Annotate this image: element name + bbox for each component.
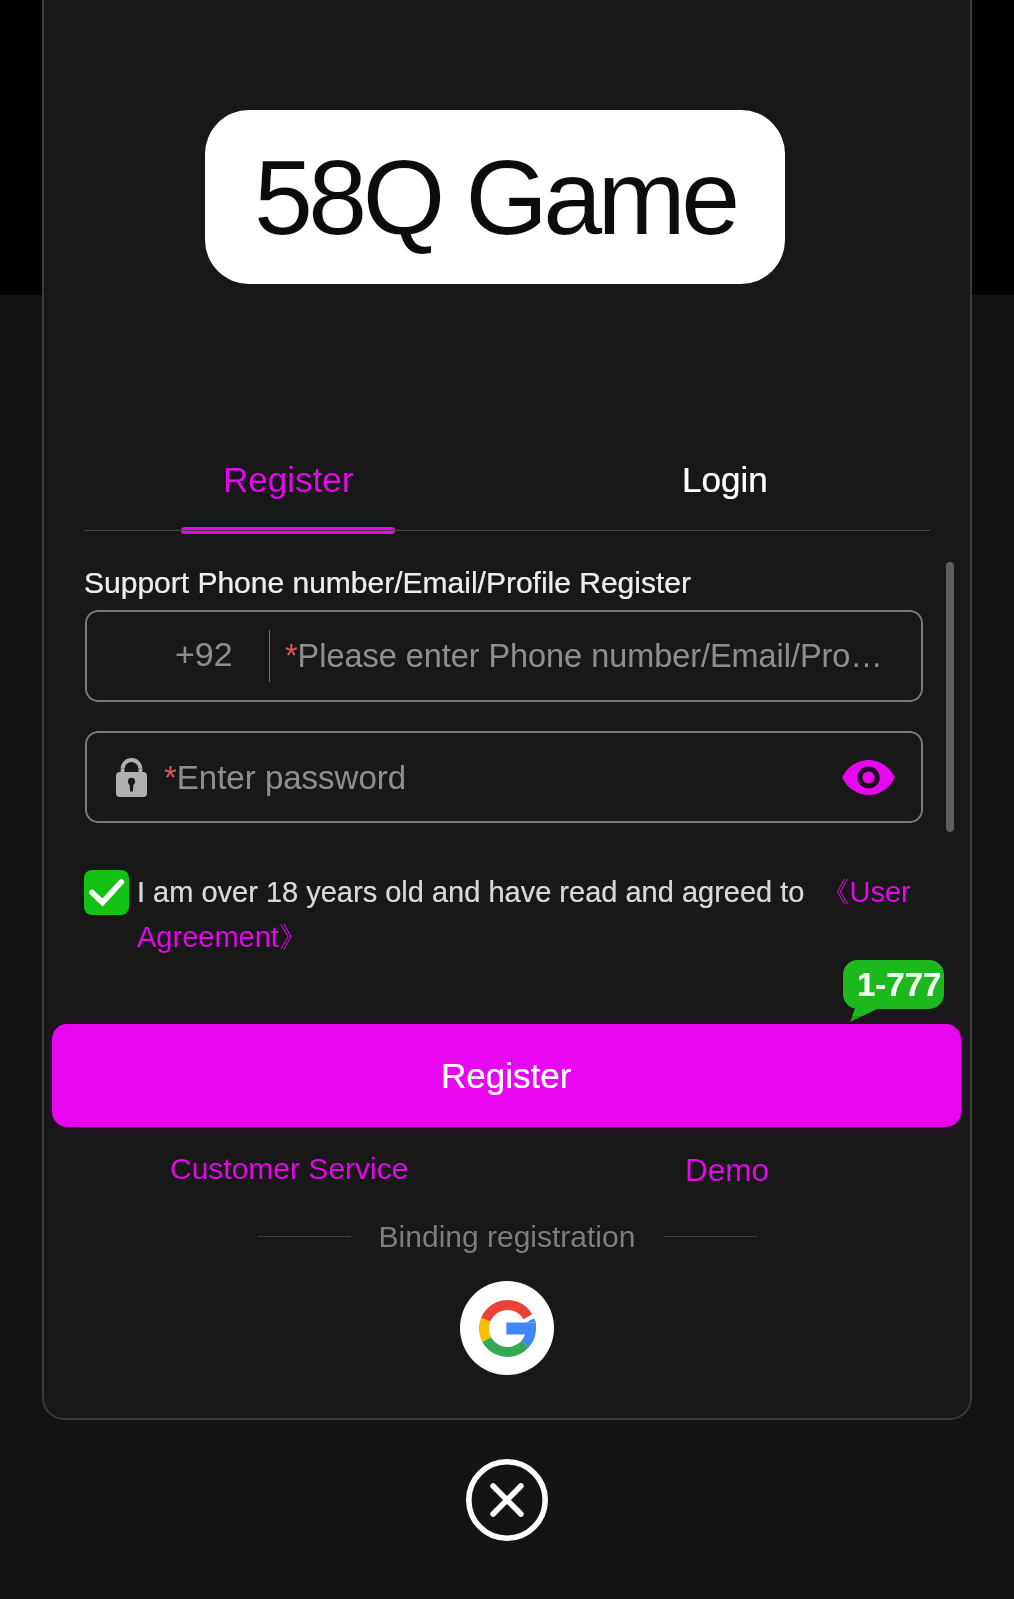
button[interactable]: Login [600, 460, 850, 534]
staticText: Support Phone number/Email/Profile Regis… [84, 566, 691, 600]
staticText: Register [441, 1056, 572, 1095]
button[interactable]: I am over 18 years old and have read and… [137, 874, 927, 956]
button[interactable]: +92 [85, 610, 923, 702]
button[interactable]: Close [466, 1459, 548, 1541]
staticText: *Enter password [164, 759, 407, 796]
button[interactable]: Agree to terms [84, 870, 129, 915]
staticText: Customer Service [170, 1152, 409, 1186]
staticText: Binding registration [366, 1220, 648, 1254]
button[interactable]: Sign in with Google [460, 1281, 554, 1375]
button[interactable]: Register [160, 460, 416, 534]
staticText: I am over 18 years old and have read and… [137, 874, 927, 956]
staticText: Register [223, 460, 354, 499]
button[interactable]: Register [52, 1024, 961, 1127]
button[interactable]: Demo [640, 1145, 815, 1193]
button[interactable]: 58Q Game [205, 110, 785, 284]
staticText: 58Q Game [254, 138, 736, 256]
staticText: Demo [685, 1152, 770, 1187]
button[interactable]: *Enter password [85, 731, 923, 823]
staticText: +92 [175, 635, 233, 673]
button[interactable]: Customer Service [149, 1145, 429, 1193]
staticText: *Please enter Phone number/Email/Pro… [285, 638, 883, 674]
staticText: 1-777 [857, 966, 942, 1003]
staticText: Login [682, 460, 768, 499]
button[interactable]: Show password [837, 746, 899, 808]
